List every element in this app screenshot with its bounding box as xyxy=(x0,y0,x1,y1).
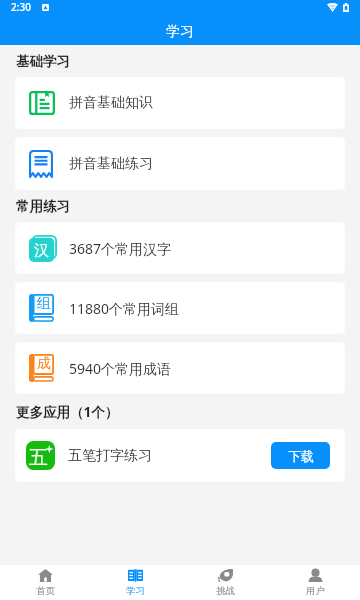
button[interactable]: 首页 xyxy=(0,565,90,600)
staticText: 下载 xyxy=(288,448,314,464)
staticText: 拼音基础练习 xyxy=(69,155,153,173)
staticText: 3687个常用汉字 xyxy=(69,239,172,258)
button[interactable]: 成 xyxy=(15,342,345,394)
button[interactable]: 五 xyxy=(15,429,345,482)
staticText: 2:30 xyxy=(11,0,31,14)
staticText: 挑战 xyxy=(216,585,235,597)
staticText: 用户 xyxy=(306,585,325,597)
button[interactable]: 组 xyxy=(15,282,345,334)
button[interactable]: 下载 xyxy=(271,442,330,469)
button[interactable]: 用户 xyxy=(270,565,360,600)
staticText: 成 xyxy=(37,355,51,373)
staticText: 五笔打字练习 xyxy=(68,447,152,465)
button[interactable]: 学习 xyxy=(90,565,180,600)
staticText: 学习 xyxy=(166,23,194,41)
button[interactable]: 挑战 xyxy=(180,565,270,600)
staticText: 五 xyxy=(29,446,48,470)
staticText: 11880个常用词组 xyxy=(69,299,180,318)
button[interactable]: 汉 xyxy=(15,222,345,274)
staticText: 汉 xyxy=(34,241,49,260)
staticText: 首页 xyxy=(36,585,55,597)
button[interactable]: 拼音基础知识 xyxy=(15,77,345,129)
staticText: 学习 xyxy=(126,585,145,597)
staticText: 5940个常用成语 xyxy=(69,359,172,378)
staticText: 更多应用（1个） xyxy=(16,403,119,421)
staticText: 常用练习 xyxy=(16,198,70,215)
button[interactable]: 拼音基础练习 xyxy=(15,137,345,190)
staticText: 基础学习 xyxy=(16,53,70,70)
staticText: 组 xyxy=(37,295,51,313)
staticText: 拼音基础知识 xyxy=(69,94,153,112)
